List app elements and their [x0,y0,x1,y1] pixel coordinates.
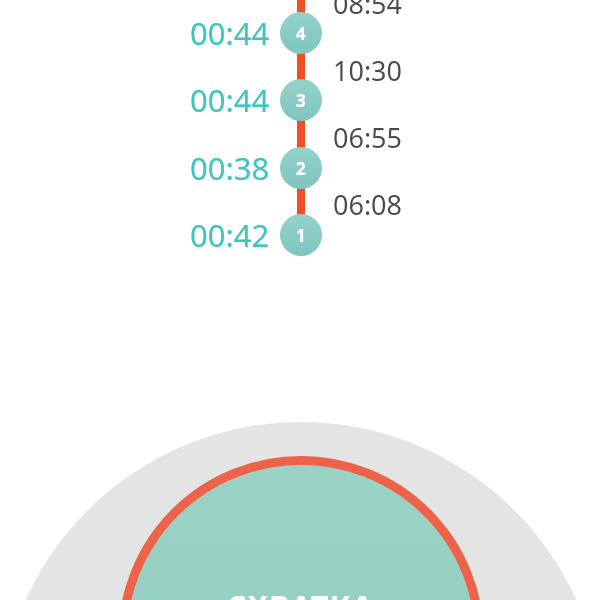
button[interactable]: Workout lap timeline [0,0,602,600]
